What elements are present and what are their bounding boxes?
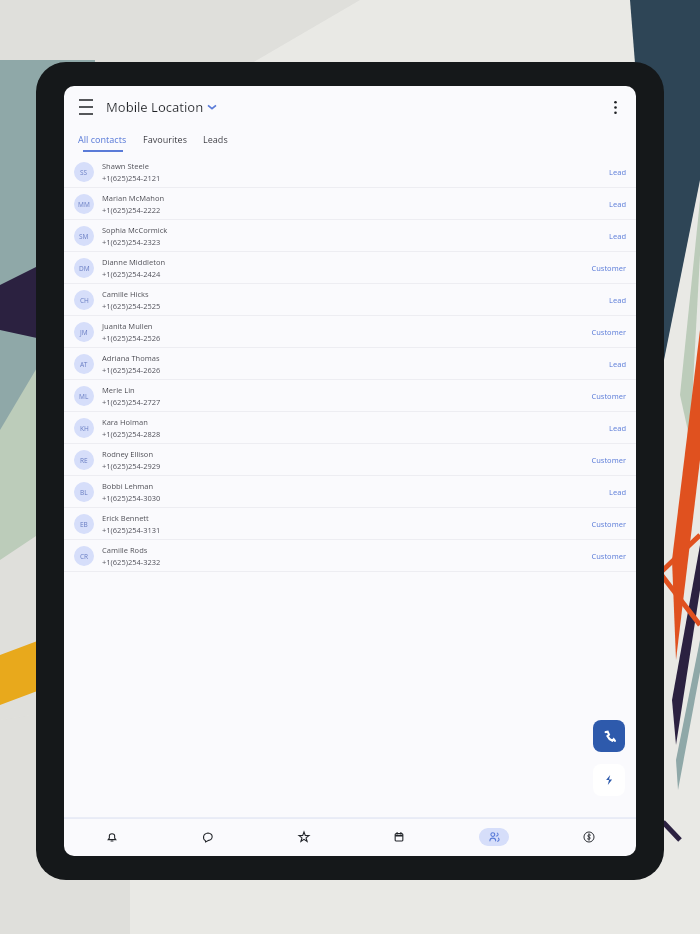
button[interactable]: More options — [602, 94, 628, 120]
button[interactable]: SS — [64, 156, 636, 188]
button[interactable]: Menu — [72, 93, 100, 121]
staticText: Rodney Ellison — [102, 449, 154, 459]
staticText: Customer — [591, 551, 626, 561]
staticText: SS — [80, 168, 88, 177]
button[interactable]: CH — [64, 284, 636, 316]
staticText: JM — [80, 328, 88, 337]
staticText: Bobbi Lehman — [102, 481, 154, 491]
staticText: +1(625)254-2222 — [102, 205, 161, 215]
button[interactable]: AT — [64, 348, 636, 380]
button[interactable]: KH — [64, 412, 636, 444]
staticText: Customer — [591, 455, 626, 465]
staticText: +1(625)254-2121 — [102, 173, 161, 183]
button[interactable]: Favourites — [143, 128, 187, 156]
button[interactable]: CR — [64, 540, 636, 572]
staticText: Mobile Location — [106, 98, 204, 116]
staticText: Customer — [591, 519, 626, 529]
staticText: Lead — [609, 359, 626, 369]
staticText: +1(625)254-3232 — [102, 557, 161, 567]
staticText: EB — [80, 520, 88, 529]
button[interactable]: Quick actions — [593, 764, 625, 796]
button[interactable]: Mobile Location — [106, 98, 216, 116]
staticText: Leads — [203, 133, 228, 145]
staticText: Customer — [591, 327, 626, 337]
staticText: BL — [80, 488, 88, 497]
staticText: CR — [80, 552, 89, 561]
staticText: CH — [80, 296, 89, 305]
staticText: Customer — [591, 391, 626, 401]
button[interactable]: Leads — [203, 128, 228, 156]
staticText: Erick Bennett — [102, 513, 149, 523]
staticText: Lead — [609, 423, 626, 433]
staticText: Dianne Middleton — [102, 257, 166, 267]
button[interactable]: DM — [64, 252, 636, 284]
staticText: ML — [79, 392, 89, 401]
button[interactable]: Call — [593, 720, 625, 752]
staticText: +1(625)254-2323 — [102, 237, 161, 247]
staticText: RE — [80, 456, 88, 465]
staticText: Lead — [609, 295, 626, 305]
staticText: +1(625)254-2626 — [102, 365, 161, 375]
staticText: MM — [78, 200, 90, 209]
staticText: +1(625)254-3030 — [102, 493, 161, 503]
button[interactable]: Deals — [541, 818, 636, 856]
button[interactable]: Favourites — [256, 818, 351, 856]
staticText: +1(625)254-2525 — [102, 301, 161, 311]
staticText: Merle Lin — [102, 385, 135, 395]
staticText: Customer — [591, 263, 626, 273]
staticText: Lead — [609, 167, 626, 177]
staticText: +1(625)254-2424 — [102, 269, 161, 279]
staticText: +1(625)254-3131 — [102, 525, 161, 535]
staticText: Marian McMahon — [102, 193, 165, 203]
staticText: Shawn Steele — [102, 161, 149, 171]
staticText: Adriana Thomas — [102, 353, 160, 363]
staticText: AT — [80, 360, 88, 369]
staticText: Lead — [609, 231, 626, 241]
staticText: DM — [79, 264, 90, 273]
button[interactable]: Notifications — [64, 818, 160, 856]
staticText: Favourites — [143, 133, 187, 145]
staticText: +1(625)254-2828 — [102, 429, 161, 439]
button[interactable]: RE — [64, 444, 636, 476]
button[interactable]: JM — [64, 316, 636, 348]
button[interactable]: SM — [64, 220, 636, 252]
staticText: SM — [79, 232, 89, 241]
button[interactable]: ML — [64, 380, 636, 412]
staticText: +1(625)254-2727 — [102, 397, 161, 407]
button[interactable]: Calendar — [351, 818, 446, 856]
staticText: Camille Hicks — [102, 289, 149, 299]
staticText: Camille Rods — [102, 545, 148, 555]
staticText: +1(625)254-2929 — [102, 461, 161, 471]
staticText: KH — [80, 424, 89, 433]
button[interactable]: EB — [64, 508, 636, 540]
button[interactable]: BL — [64, 476, 636, 508]
button[interactable]: MM — [64, 188, 636, 220]
button[interactable]: Contacts — [446, 818, 541, 856]
staticText: Kara Holman — [102, 417, 148, 427]
staticText: All contacts — [78, 133, 127, 145]
staticText: Lead — [609, 487, 626, 497]
staticText: Juanita Mullen — [102, 321, 153, 331]
staticText: +1(625)254-2526 — [102, 333, 161, 343]
staticText: Sophia McCormick — [102, 225, 168, 235]
staticText: Lead — [609, 199, 626, 209]
button[interactable]: Messages — [160, 818, 256, 856]
button[interactable]: All contacts — [78, 128, 127, 156]
